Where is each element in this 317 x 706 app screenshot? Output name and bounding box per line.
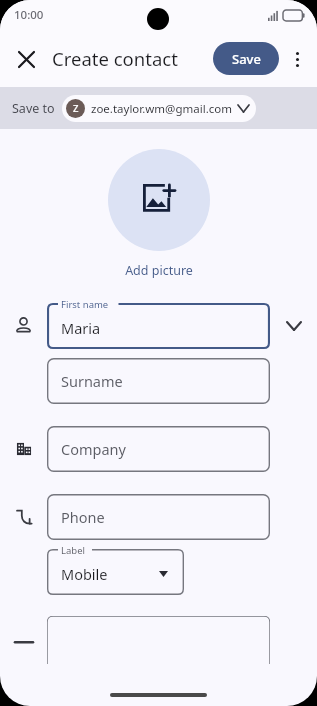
- staticText: zoe.taylor.wm@gmail.com: [91, 101, 232, 117]
- staticText: Z: [73, 102, 79, 115]
- staticText: Label: [61, 544, 85, 557]
- button[interactable]: Phone: [47, 494, 270, 540]
- staticText: Phone: [61, 507, 105, 527]
- button[interactable]: Add picture: [125, 262, 193, 279]
- staticText: Maria: [61, 318, 101, 338]
- button[interactable]: Save: [213, 42, 279, 75]
- staticText: Save to: [12, 100, 55, 117]
- staticText: First name: [61, 298, 109, 311]
- staticText: Mobile: [61, 564, 108, 584]
- button[interactable]: Label: Mobile: [47, 549, 184, 595]
- button[interactable]: [47, 616, 270, 664]
- button[interactable]: Expand name fields: [270, 302, 317, 349]
- button[interactable]: First name: [47, 303, 270, 349]
- button[interactable]: Add picture: [108, 149, 210, 251]
- staticText: Surname: [61, 371, 123, 391]
- button[interactable]: Z: [62, 95, 256, 122]
- staticText: Save: [232, 50, 261, 68]
- button[interactable]: Company: [47, 426, 270, 472]
- staticText: Company: [61, 439, 126, 459]
- button[interactable]: Surname: [47, 358, 270, 404]
- button[interactable]: Close: [6, 39, 46, 79]
- button[interactable]: More options: [279, 41, 315, 77]
- staticText: Create contact: [52, 46, 178, 71]
- staticText: 10:00: [14, 7, 44, 23]
